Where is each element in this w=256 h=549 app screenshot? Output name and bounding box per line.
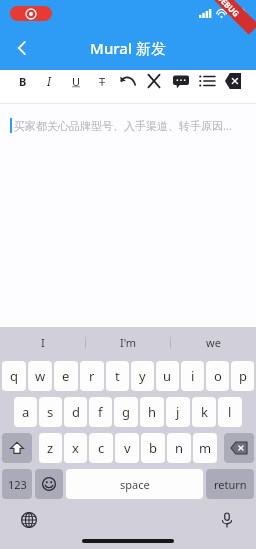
button[interactable]: Delete — [222, 70, 244, 92]
staticText: r — [89, 367, 95, 385]
staticText: w — [35, 367, 46, 385]
staticText: Mural 新发 — [90, 38, 166, 58]
button[interactable]: space — [66, 469, 203, 499]
staticText: x — [72, 439, 79, 457]
button[interactable]: y — [131, 361, 154, 391]
button[interactable]: return — [206, 469, 254, 499]
button[interactable]: Change keyboard language — [18, 509, 40, 531]
button[interactable]: Clear formatting — [143, 70, 165, 92]
button[interactable]: Underline — [65, 70, 87, 92]
staticText: o — [214, 367, 222, 385]
button[interactable]: w — [28, 361, 52, 391]
button[interactable]: f — [89, 397, 112, 427]
staticText: we — [206, 335, 221, 350]
button[interactable]: a — [14, 397, 37, 427]
button[interactable]: Backspace — [224, 433, 254, 463]
button[interactable]: Back — [0, 26, 44, 70]
staticText: j — [176, 403, 180, 421]
staticText: q — [10, 367, 18, 385]
staticText: t — [115, 367, 120, 385]
button[interactable]: d — [64, 397, 87, 427]
staticText: f — [98, 403, 103, 421]
button[interactable]: Bulleted list — [196, 70, 218, 92]
button[interactable]: I'm — [86, 327, 171, 357]
button[interactable]: Undo — [117, 70, 139, 92]
staticText: DEBUG — [215, 0, 242, 19]
staticText: h — [148, 403, 157, 421]
button[interactable]: z — [39, 433, 62, 463]
staticText: n — [175, 439, 184, 457]
staticText: z — [47, 439, 54, 457]
button[interactable]: Recording — [10, 6, 52, 21]
staticText: k — [201, 403, 208, 421]
staticText: p — [239, 367, 247, 385]
staticText: B — [19, 74, 27, 89]
staticText: I'm — [120, 335, 137, 350]
staticText: y — [139, 367, 146, 385]
button[interactable]: we — [171, 327, 256, 357]
button[interactable]: c — [89, 433, 113, 463]
staticText: a — [22, 403, 30, 421]
staticText: i — [191, 367, 195, 385]
button[interactable]: n — [167, 433, 191, 463]
button[interactable]: p — [231, 361, 254, 391]
staticText: return — [214, 477, 247, 492]
button[interactable]: Comment — [170, 70, 192, 92]
staticText: U — [72, 74, 81, 89]
button[interactable]: t — [106, 361, 129, 391]
staticText: v — [124, 439, 131, 457]
button[interactable]: b — [141, 433, 165, 463]
button[interactable]: i — [181, 361, 204, 391]
staticText: space — [120, 477, 150, 492]
button[interactable]: o — [206, 361, 229, 391]
staticText: b — [149, 439, 157, 457]
button[interactable]: s — [39, 397, 62, 427]
button[interactable]: l — [218, 397, 242, 427]
button[interactable]: Voice input — [216, 509, 238, 531]
button[interactable]: Emoji — [35, 469, 63, 499]
staticText: T — [99, 74, 106, 89]
button[interactable]: Shift — [2, 433, 32, 463]
staticText: m — [199, 439, 212, 457]
button[interactable]: I — [0, 327, 86, 357]
staticText: l — [228, 403, 232, 421]
button[interactable]: e — [54, 361, 78, 391]
staticText: c — [98, 439, 105, 457]
button[interactable]: k — [192, 397, 216, 427]
button[interactable]: v — [115, 433, 139, 463]
staticText: 买家都关心品牌型号、入手渠道、转手原因... — [14, 118, 232, 133]
staticText: 123 — [8, 477, 27, 492]
staticText: I — [47, 73, 51, 89]
staticText: e — [62, 367, 70, 385]
button[interactable]: m — [193, 433, 217, 463]
button[interactable]: Strikethrough — [91, 70, 113, 92]
staticText: g — [122, 403, 130, 421]
button[interactable]: x — [64, 433, 87, 463]
button[interactable]: q — [2, 361, 26, 391]
button[interactable]: j — [166, 397, 190, 427]
button[interactable]: h — [140, 397, 164, 427]
button[interactable]: u — [156, 361, 179, 391]
staticText: u — [163, 367, 172, 385]
button[interactable]: Italic — [38, 70, 60, 92]
button[interactable]: 123 — [2, 469, 32, 499]
button[interactable]: Bold — [12, 70, 34, 92]
staticText: s — [47, 403, 54, 421]
button[interactable]: r — [80, 361, 104, 391]
button[interactable]: g — [114, 397, 138, 427]
staticText: I — [41, 335, 45, 350]
staticText: d — [72, 403, 80, 421]
